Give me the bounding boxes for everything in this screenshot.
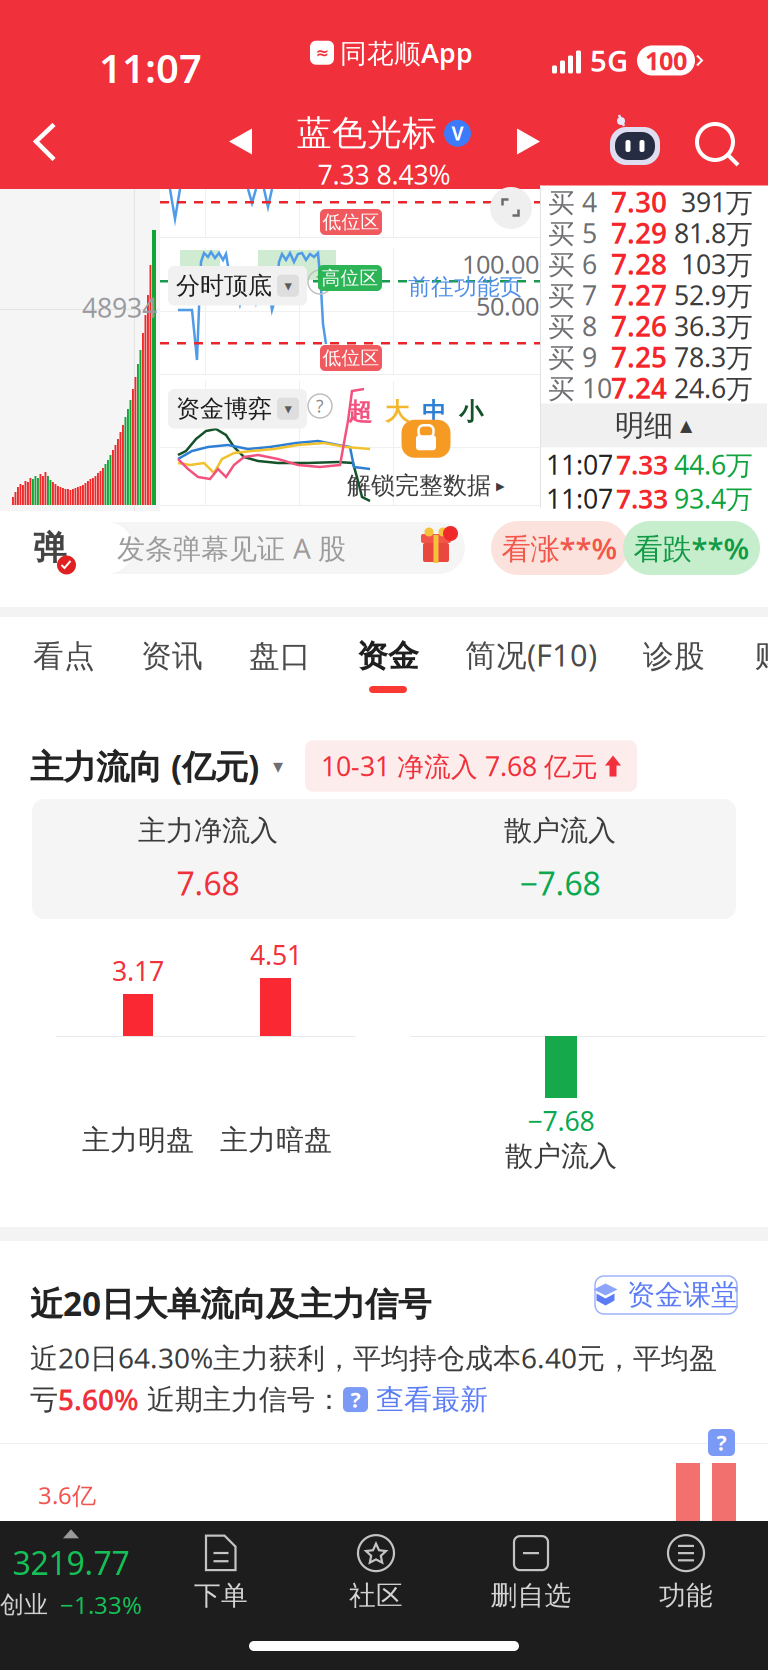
button[interactable]: 资金课堂 — [595, 1276, 737, 1314]
staticText: 看点 — [33, 637, 95, 675]
staticText: V — [451, 121, 463, 146]
staticText: 100 — [645, 44, 687, 77]
staticText: ▾ — [273, 755, 283, 777]
staticText: 主力净流入 — [138, 814, 278, 848]
staticText: 近期主力信号： — [139, 1382, 343, 1417]
staticText: 391万 — [681, 184, 753, 220]
staticText: 11:07 — [546, 481, 613, 516]
button[interactable]: AI 助手 — [602, 109, 668, 175]
staticText: 大 — [385, 397, 409, 426]
staticText: ? — [316, 394, 324, 417]
staticText: 财 — [754, 637, 768, 675]
button[interactable]: 搜索 — [682, 109, 748, 175]
staticText: 24.6万 — [674, 370, 753, 406]
staticText: 盘口 — [249, 637, 311, 675]
staticText: 低位区 — [322, 210, 379, 233]
staticText: 发条弹幕见证 A 股 — [117, 529, 346, 567]
staticText: 散户流入 — [505, 1139, 617, 1173]
staticText: 删自选 — [490, 1579, 571, 1612]
staticText: 前往功能页 — [408, 273, 523, 301]
staticText: 看跌**% — [633, 528, 749, 567]
staticText: 低位区 — [322, 346, 379, 369]
button[interactable]: 下一只 — [500, 114, 556, 170]
staticText: 买 8 — [548, 308, 597, 344]
staticText: 资金课堂 — [627, 1278, 739, 1312]
button[interactable]: 诊股 — [620, 617, 728, 711]
staticText: 52.9万 — [674, 277, 753, 313]
staticText: 明细 — [615, 407, 673, 443]
staticText: 社区 — [349, 1579, 403, 1612]
staticText: 查看最新 — [368, 1382, 488, 1417]
staticText: 买 10 — [548, 370, 612, 406]
staticText: 100.00 — [462, 247, 539, 281]
button[interactable]: 3219.77 — [0, 1529, 142, 1621]
staticText: 3.17 — [112, 953, 164, 988]
button[interactable]: 财 — [728, 617, 768, 711]
staticText: 93.4万 — [674, 481, 753, 516]
staticText: −1.33% — [60, 1589, 142, 1621]
staticText: ▾ — [284, 400, 291, 417]
button[interactable]: 看跌**% — [623, 521, 760, 575]
staticText: 蓝色光标 — [297, 112, 437, 155]
staticText: 买 7 — [548, 277, 597, 313]
staticText: 主力暗盘 — [220, 1123, 332, 1157]
staticText: ▸ — [496, 476, 505, 495]
staticText: 7.28 — [611, 245, 667, 283]
staticText: 7.68 — [176, 862, 239, 904]
staticText: 78.3万 — [674, 339, 753, 375]
staticText: 103万 — [681, 246, 753, 282]
staticText: 功能 — [659, 1579, 713, 1612]
staticText: −7.68 — [527, 1103, 594, 1138]
staticText: ? — [716, 1428, 726, 1457]
staticText: 7.30 — [611, 183, 667, 221]
button[interactable]: 返回 — [14, 107, 76, 177]
staticText: 买 9 — [548, 339, 597, 375]
staticText: 近20日64.30%主力获利，平均持仓成本6.40元，平均盈 — [30, 1339, 717, 1376]
staticText: 分时顶底 — [176, 271, 272, 300]
button[interactable]: 上一只 — [213, 114, 269, 170]
staticText: 5G — [590, 41, 628, 80]
staticText: 下单 — [194, 1579, 248, 1612]
staticText: 散户流入 — [504, 814, 616, 848]
staticText: ? — [350, 1385, 360, 1414]
staticText: 3.6亿 — [38, 1479, 96, 1511]
staticText: 4.51 — [250, 937, 302, 972]
staticText: 资讯 — [141, 637, 203, 675]
staticText: 高位区 — [321, 266, 378, 289]
staticText: ▾ — [284, 277, 291, 294]
button[interactable]: 弹 — [9, 522, 465, 574]
staticText: 弹 — [33, 527, 66, 568]
staticText: 解锁完整数据 — [347, 471, 491, 500]
button[interactable]: 资讯 — [118, 617, 226, 711]
staticText: 7.29 — [611, 214, 667, 252]
staticText: 资金 — [357, 637, 419, 675]
staticText: 买 5 — [548, 215, 597, 251]
staticText: 创业 — [0, 1590, 48, 1619]
staticText: 81.8万 — [674, 215, 753, 251]
button[interactable]: 功能 — [626, 1531, 746, 1615]
staticText: 7.24 — [611, 369, 667, 407]
button[interactable]: 资金 — [334, 617, 442, 711]
staticText: 11:07 — [546, 447, 613, 482]
button[interactable]: 社区 — [316, 1531, 436, 1615]
staticText: 5.60% — [58, 1381, 139, 1418]
button[interactable]: 简况(F10) — [442, 617, 620, 711]
staticText: 主力流向 (亿元) — [30, 744, 259, 788]
staticText: 11:07 — [99, 41, 202, 94]
button[interactable]: 解锁完整数据 — [316, 425, 536, 495]
staticText: 亏 — [30, 1382, 58, 1417]
staticText: 7.33 — [616, 447, 668, 482]
staticText: 主力明盘 — [82, 1123, 194, 1157]
button[interactable]: 盘口 — [226, 617, 334, 711]
button[interactable]: 看涨**% — [491, 521, 628, 575]
staticText: 买 4 — [548, 184, 597, 220]
staticText: 诊股 — [643, 637, 705, 675]
staticText: 中 — [422, 397, 446, 426]
button[interactable]: 看点 — [10, 617, 118, 711]
button[interactable]: 下单 — [161, 1531, 281, 1615]
staticText: 买 6 — [548, 246, 597, 282]
staticText: 7.33 8.43% — [317, 157, 450, 192]
staticText: 简况(F10) — [465, 634, 597, 675]
button[interactable]: 删自选 — [471, 1531, 591, 1615]
staticText: 3219.77 — [12, 1541, 129, 1584]
